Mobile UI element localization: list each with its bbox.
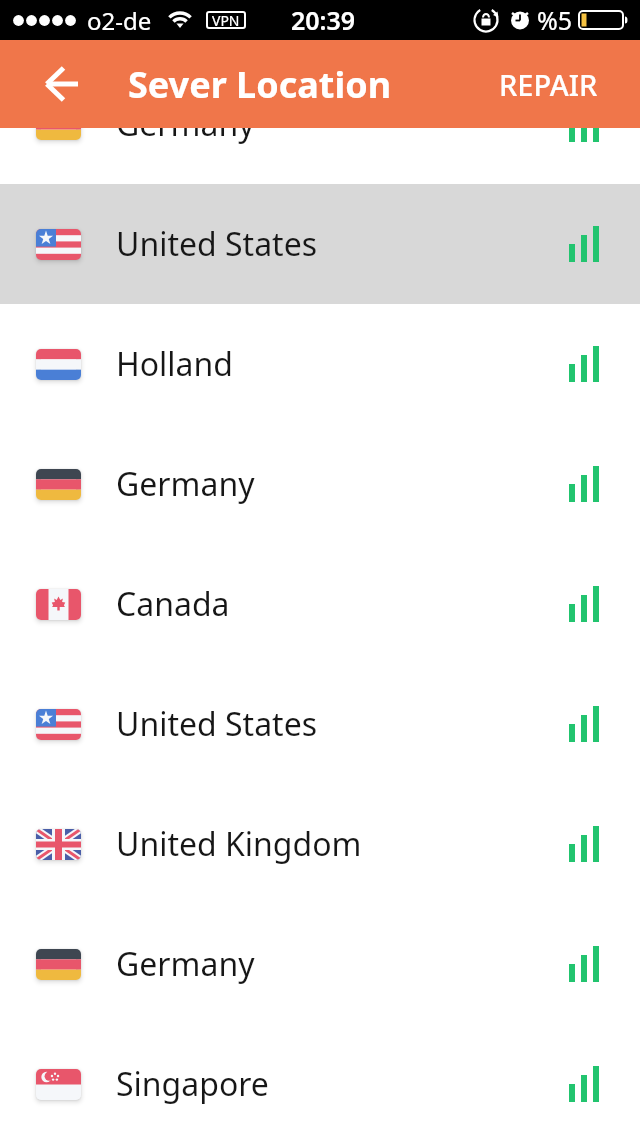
button[interactable]: Canada: [0, 544, 640, 664]
button[interactable]: Germany: [0, 904, 640, 1024]
button[interactable]: REPAIR: [487, 55, 610, 114]
staticText: Canada: [116, 582, 230, 626]
button[interactable]: Singapore: [0, 1024, 640, 1136]
button[interactable]: Germany: [0, 424, 640, 544]
button[interactable]: United States: [0, 184, 640, 304]
staticText: o2-de: [87, 4, 152, 37]
staticText: United Kingdom: [116, 822, 362, 866]
staticText: Sever Location: [128, 60, 392, 109]
staticText: %5: [537, 3, 573, 37]
staticText: Holland: [116, 342, 233, 386]
staticText: Germany: [116, 942, 255, 986]
staticText: REPAIR: [499, 65, 598, 104]
button[interactable]: Holland: [0, 304, 640, 424]
staticText: Germany: [116, 102, 255, 146]
button[interactable]: United States: [0, 664, 640, 784]
staticText: VPN: [212, 11, 240, 29]
button[interactable]: [36, 58, 88, 110]
button[interactable]: United Kingdom: [0, 784, 640, 904]
staticText: Germany: [116, 462, 255, 506]
staticText: United States: [116, 702, 318, 746]
button[interactable]: Germany: [0, 64, 640, 184]
staticText: Singapore: [116, 1062, 269, 1106]
staticText: United States: [116, 222, 318, 266]
staticText: 20:39: [291, 3, 356, 37]
